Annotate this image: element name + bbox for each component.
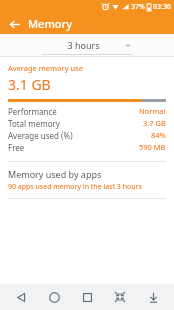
staticText: Total memory: [8, 118, 60, 129]
staticText: 3 hours: [42, 39, 125, 51]
staticText: Average memory use: [8, 63, 83, 73]
staticText: 3.7 GB: [143, 118, 166, 128]
button[interactable]: Back: [9, 285, 33, 309]
staticText: 03:30: [153, 2, 171, 12]
button[interactable]: Home: [42, 285, 66, 309]
button[interactable]: Total memory: [0, 117, 174, 129]
button[interactable]: Recent apps: [75, 285, 99, 309]
button[interactable]: Free: [0, 141, 174, 153]
staticText: 84%: [151, 130, 166, 140]
staticText: Normal: [139, 106, 166, 116]
button[interactable]: Back: [6, 16, 22, 32]
button[interactable]: Hide keyboard: [141, 285, 165, 309]
staticText: 37%: [131, 2, 145, 12]
staticText: 90 apps used memory in the last 3 hours: [8, 182, 142, 192]
staticText: 590 MB: [139, 142, 166, 152]
staticText: 3.1 GB: [8, 75, 51, 94]
button[interactable]: Collapse: [108, 285, 132, 309]
staticText: Performance: [8, 106, 57, 117]
button[interactable]: Average used (%): [0, 129, 174, 141]
button[interactable]: Performance: [0, 105, 174, 117]
staticText: Memory: [28, 16, 73, 31]
staticText: Memory used by apps: [8, 168, 102, 180]
staticText: Free: [8, 142, 25, 153]
staticText: Average used (%): [8, 130, 73, 141]
button[interactable]: Memory used by apps: [0, 162, 174, 198]
button[interactable]: 3 hours: [42, 35, 132, 55]
